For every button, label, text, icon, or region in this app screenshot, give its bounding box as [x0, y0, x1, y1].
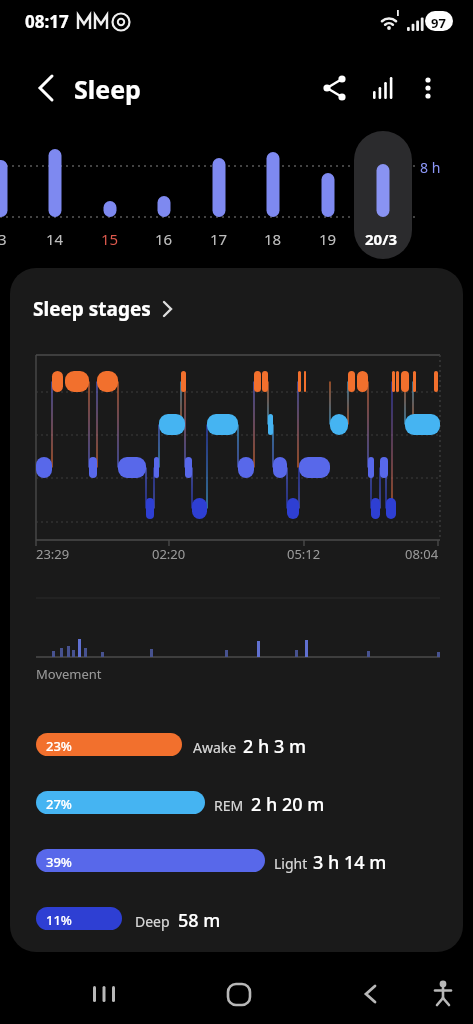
button[interactable]: Sleep stages — [33, 294, 193, 326]
button[interactable]: 23% — [36, 733, 456, 759]
staticText: 19 — [319, 229, 337, 249]
button[interactable]: 11% — [36, 907, 456, 933]
button[interactable] — [412, 72, 444, 104]
button[interactable] — [85, 974, 125, 1014]
staticText: 23% — [46, 737, 72, 755]
button[interactable] — [319, 72, 351, 104]
button[interactable] — [350, 974, 390, 1014]
staticText: 11% — [46, 911, 72, 929]
button[interactable] — [367, 72, 399, 104]
staticText: 3 — [0, 229, 7, 249]
button[interactable] — [219, 974, 259, 1014]
staticText: 08:17 — [25, 10, 69, 33]
staticText: Sleep — [74, 72, 141, 106]
staticText: Light — [274, 854, 308, 873]
staticText: 97 — [431, 14, 446, 32]
button[interactable] — [354, 131, 412, 259]
staticText: 39% — [46, 853, 72, 871]
button[interactable]: 39% — [36, 849, 456, 875]
button[interactable] — [30, 72, 62, 104]
staticText: 2 h 20 m — [251, 792, 325, 817]
staticText: Awake — [193, 738, 237, 757]
button[interactable] — [423, 974, 463, 1014]
staticText: 15 — [101, 229, 119, 249]
staticText: Deep — [135, 912, 170, 931]
staticText: 08:04 — [405, 545, 439, 563]
staticText: 17 — [210, 229, 228, 249]
staticText: 23:29 — [36, 545, 70, 563]
staticText: 16 — [155, 229, 173, 249]
staticText: 27% — [46, 795, 72, 813]
staticText: 8 h — [420, 158, 441, 177]
staticText: 20/3 — [365, 229, 397, 249]
staticText: 02:20 — [152, 545, 186, 563]
staticText: 18 — [264, 229, 282, 249]
staticText: 05:12 — [287, 545, 321, 563]
staticText: REM — [214, 796, 244, 815]
staticText: Sleep stages — [33, 296, 151, 322]
staticText: 2 h 3 m — [243, 734, 306, 759]
staticText: Movement — [36, 665, 102, 683]
staticText: 3 h 14 m — [313, 850, 387, 875]
staticText: 58 m — [178, 908, 221, 933]
button[interactable]: 27% — [36, 791, 456, 817]
staticText: 14 — [46, 229, 64, 249]
